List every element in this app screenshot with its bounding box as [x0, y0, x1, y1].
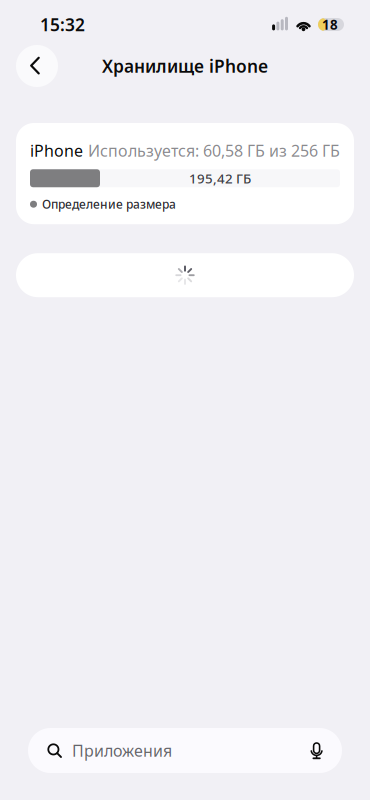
staticText: 18: [322, 16, 338, 33]
staticText: Используется: 60,58 ГБ из 256 ГБ: [88, 140, 340, 161]
staticText: Определение размера: [42, 196, 176, 212]
button[interactable]: Назад: [16, 45, 58, 87]
staticText: iPhone: [30, 140, 83, 161]
staticText: Хранилище iPhone: [102, 54, 268, 77]
button[interactable]: Диктовка: [308, 741, 325, 760]
staticText: Приложения: [72, 740, 172, 761]
staticText: 195,42 ГБ: [189, 169, 251, 187]
staticText: 15:32: [40, 13, 85, 36]
